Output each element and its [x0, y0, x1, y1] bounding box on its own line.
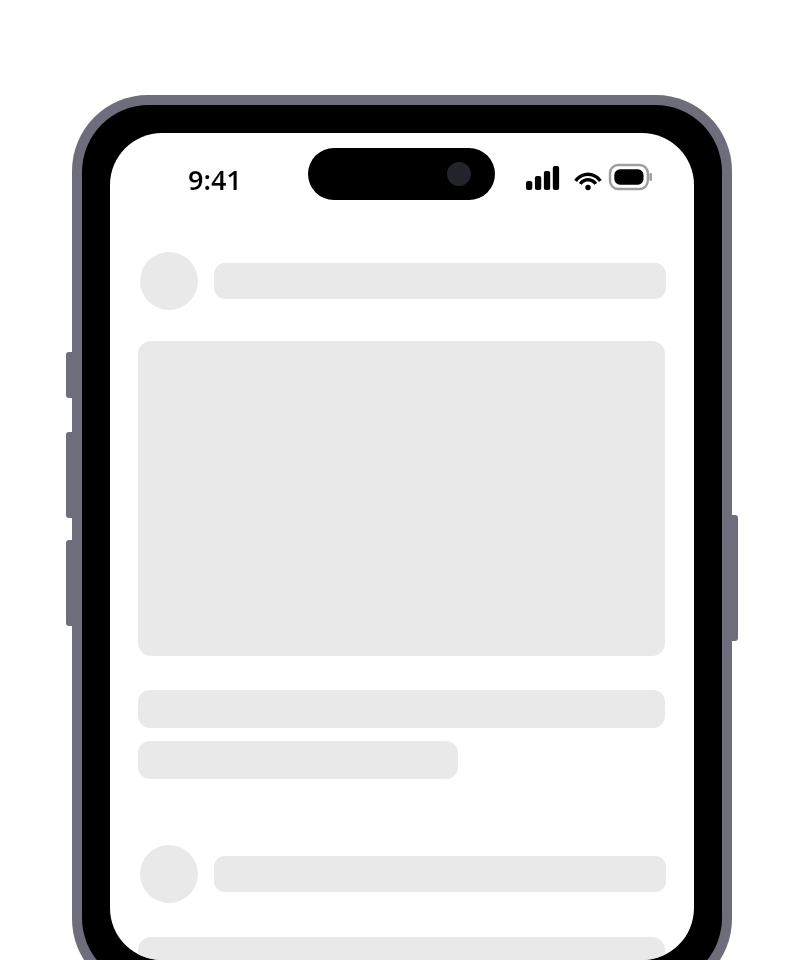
button[interactable]: Volume up [66, 432, 76, 518]
button[interactable]: Silent switch [66, 352, 76, 398]
button[interactable]: Volume down [66, 540, 76, 626]
button[interactable]: Power [728, 515, 738, 641]
button[interactable] [140, 252, 666, 310]
staticText: 9:41 [188, 161, 242, 198]
button[interactable] [140, 845, 666, 903]
